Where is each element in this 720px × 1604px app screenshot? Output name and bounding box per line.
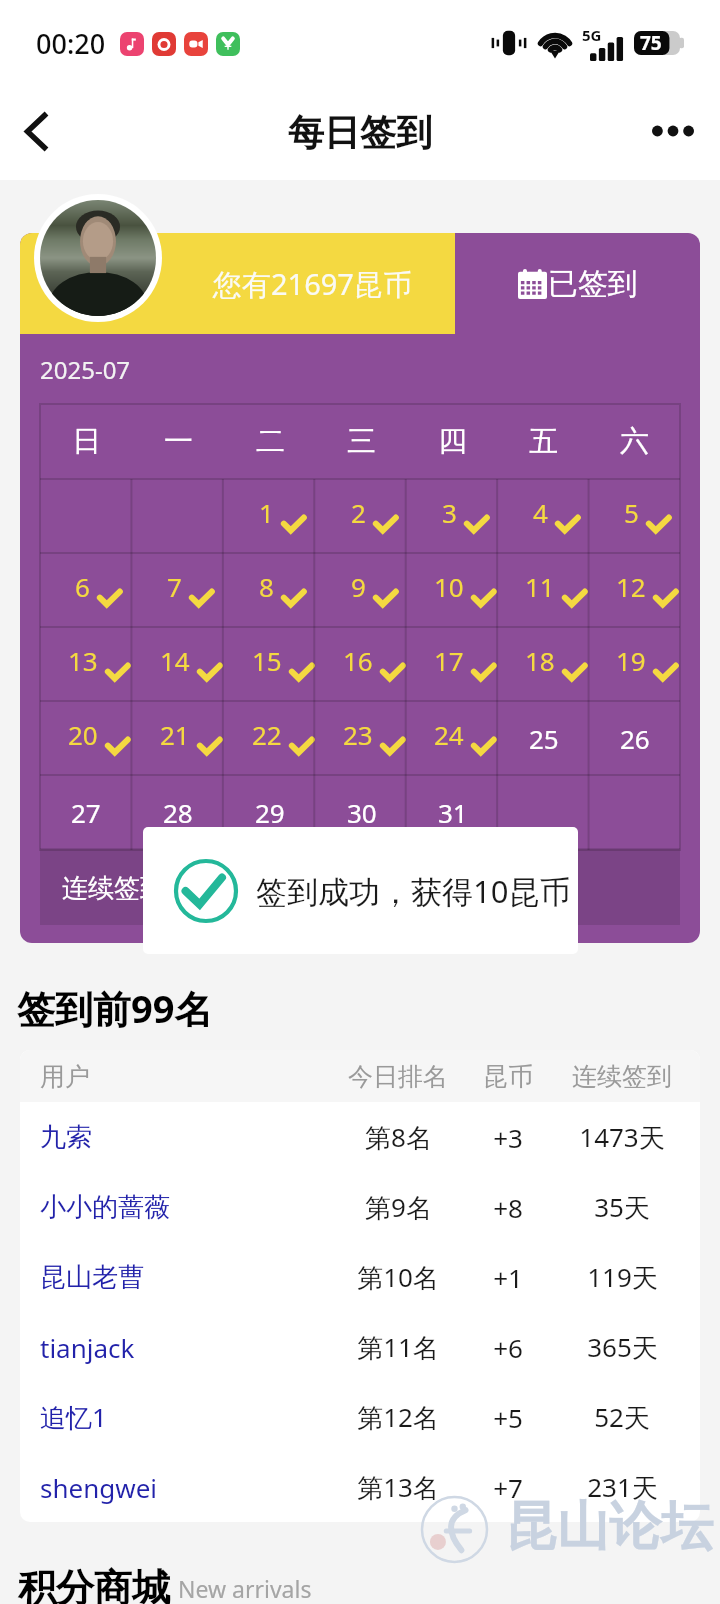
button[interactable]: 23	[316, 701, 407, 775]
button[interactable]: 26	[589, 701, 680, 775]
staticText: 7	[167, 569, 182, 604]
button[interactable]: 6	[40, 553, 132, 627]
button[interactable]: Back	[0, 91, 72, 171]
staticText: 一	[164, 423, 193, 460]
button[interactable]: 小小的蔷薇	[20, 1172, 700, 1242]
button[interactable]: 24	[407, 701, 498, 775]
button[interactable]: 10	[407, 553, 498, 627]
button[interactable]: 21	[132, 701, 224, 775]
staticText: 4	[533, 495, 548, 530]
button[interactable]: 1	[224, 479, 316, 553]
staticText: 六	[620, 423, 649, 460]
staticText: 231天	[587, 1469, 658, 1505]
button[interactable]	[498, 775, 589, 849]
button[interactable]: 29	[224, 775, 316, 849]
staticText: 第9名	[365, 1189, 432, 1225]
staticText: 已签到	[548, 265, 638, 303]
staticText: 30	[347, 795, 377, 830]
staticText: 9	[351, 569, 366, 604]
button[interactable]: 3	[407, 479, 498, 553]
staticText: 31	[438, 795, 468, 830]
button[interactable]: 22	[224, 701, 316, 775]
button[interactable]: 7	[132, 553, 224, 627]
staticText: 25	[529, 721, 559, 756]
staticText: 5	[624, 495, 639, 530]
staticText: 16	[343, 643, 373, 678]
button[interactable]: 17	[407, 627, 498, 701]
staticText: 昆山论坛	[505, 1494, 713, 1560]
staticText: 10	[434, 569, 464, 604]
staticText: 75	[640, 30, 662, 56]
staticText: 1473天	[579, 1119, 665, 1155]
staticText: 11	[525, 569, 555, 604]
button[interactable]: 31	[407, 775, 498, 849]
staticText: 22	[252, 717, 282, 752]
button[interactable]: 19	[589, 627, 680, 701]
staticText: 每日签到	[288, 110, 432, 155]
staticText: 21	[160, 717, 190, 752]
staticText: 2025-07	[40, 353, 131, 386]
button[interactable]: 13	[40, 627, 132, 701]
staticText: New arrivals	[178, 1573, 312, 1604]
button[interactable]: 5	[589, 479, 680, 553]
staticText: 365天	[587, 1329, 658, 1365]
staticText: 第8名	[365, 1119, 432, 1155]
button[interactable]	[589, 775, 680, 849]
button[interactable]: 15	[224, 627, 316, 701]
staticText: 18	[525, 643, 555, 678]
staticText: 13	[68, 643, 98, 678]
staticText: 19	[616, 643, 646, 678]
staticText: +6	[493, 1330, 523, 1365]
staticText: 14	[160, 643, 190, 678]
button[interactable]: 18	[498, 627, 589, 701]
staticText: +5	[493, 1400, 523, 1435]
button[interactable]: 14	[132, 627, 224, 701]
staticText: 日	[72, 423, 101, 460]
staticText: 连续签到	[572, 1061, 672, 1092]
button[interactable]	[40, 479, 132, 553]
staticText: 28	[163, 795, 193, 830]
staticText: 3	[442, 495, 457, 530]
staticText: 第13名	[357, 1469, 439, 1505]
button[interactable]: More options	[637, 91, 709, 171]
staticText: 20	[68, 717, 98, 752]
staticText: 52天	[594, 1399, 650, 1435]
button[interactable]: 12	[589, 553, 680, 627]
button[interactable]: 11	[498, 553, 589, 627]
button[interactable]: 九索	[20, 1102, 700, 1172]
staticText: 5G	[582, 25, 602, 45]
button[interactable]: 28	[132, 775, 224, 849]
staticText: 8	[259, 569, 274, 604]
staticText: 6	[75, 569, 90, 604]
button[interactable]: 16	[316, 627, 407, 701]
button[interactable]: tianjack	[20, 1312, 700, 1382]
staticText: 三	[347, 423, 376, 460]
staticText: 昆山老曹	[40, 1261, 144, 1294]
staticText: 四	[438, 423, 467, 460]
button[interactable]: 4	[498, 479, 589, 553]
staticText: 签到成功，获得10昆币	[256, 870, 571, 912]
button[interactable]: 追忆1	[20, 1382, 700, 1452]
button[interactable]: 27	[40, 775, 132, 849]
button[interactable]: 已签到	[455, 233, 700, 334]
button[interactable]	[132, 479, 224, 553]
button[interactable]: 昆山老曹	[20, 1242, 700, 1312]
staticText: 1	[259, 495, 274, 530]
staticText: 今日排名	[348, 1061, 448, 1092]
button[interactable]: 8	[224, 553, 316, 627]
button[interactable]: shengwei	[20, 1452, 700, 1522]
staticText: shengwei	[40, 1470, 158, 1505]
staticText: +1	[493, 1260, 523, 1295]
staticText: 29	[255, 795, 285, 830]
staticText: 12	[616, 569, 646, 604]
staticText: 24	[434, 717, 464, 752]
button[interactable]: 9	[316, 553, 407, 627]
staticText: 签到前99名	[17, 982, 213, 1034]
button[interactable]: 25	[498, 701, 589, 775]
button[interactable]: 30	[316, 775, 407, 849]
button[interactable]: 2	[316, 479, 407, 553]
staticText: 23	[343, 717, 373, 752]
button[interactable]: 20	[40, 701, 132, 775]
staticText: 第11名	[357, 1329, 439, 1365]
staticText: 您有21697昆币	[213, 264, 412, 304]
